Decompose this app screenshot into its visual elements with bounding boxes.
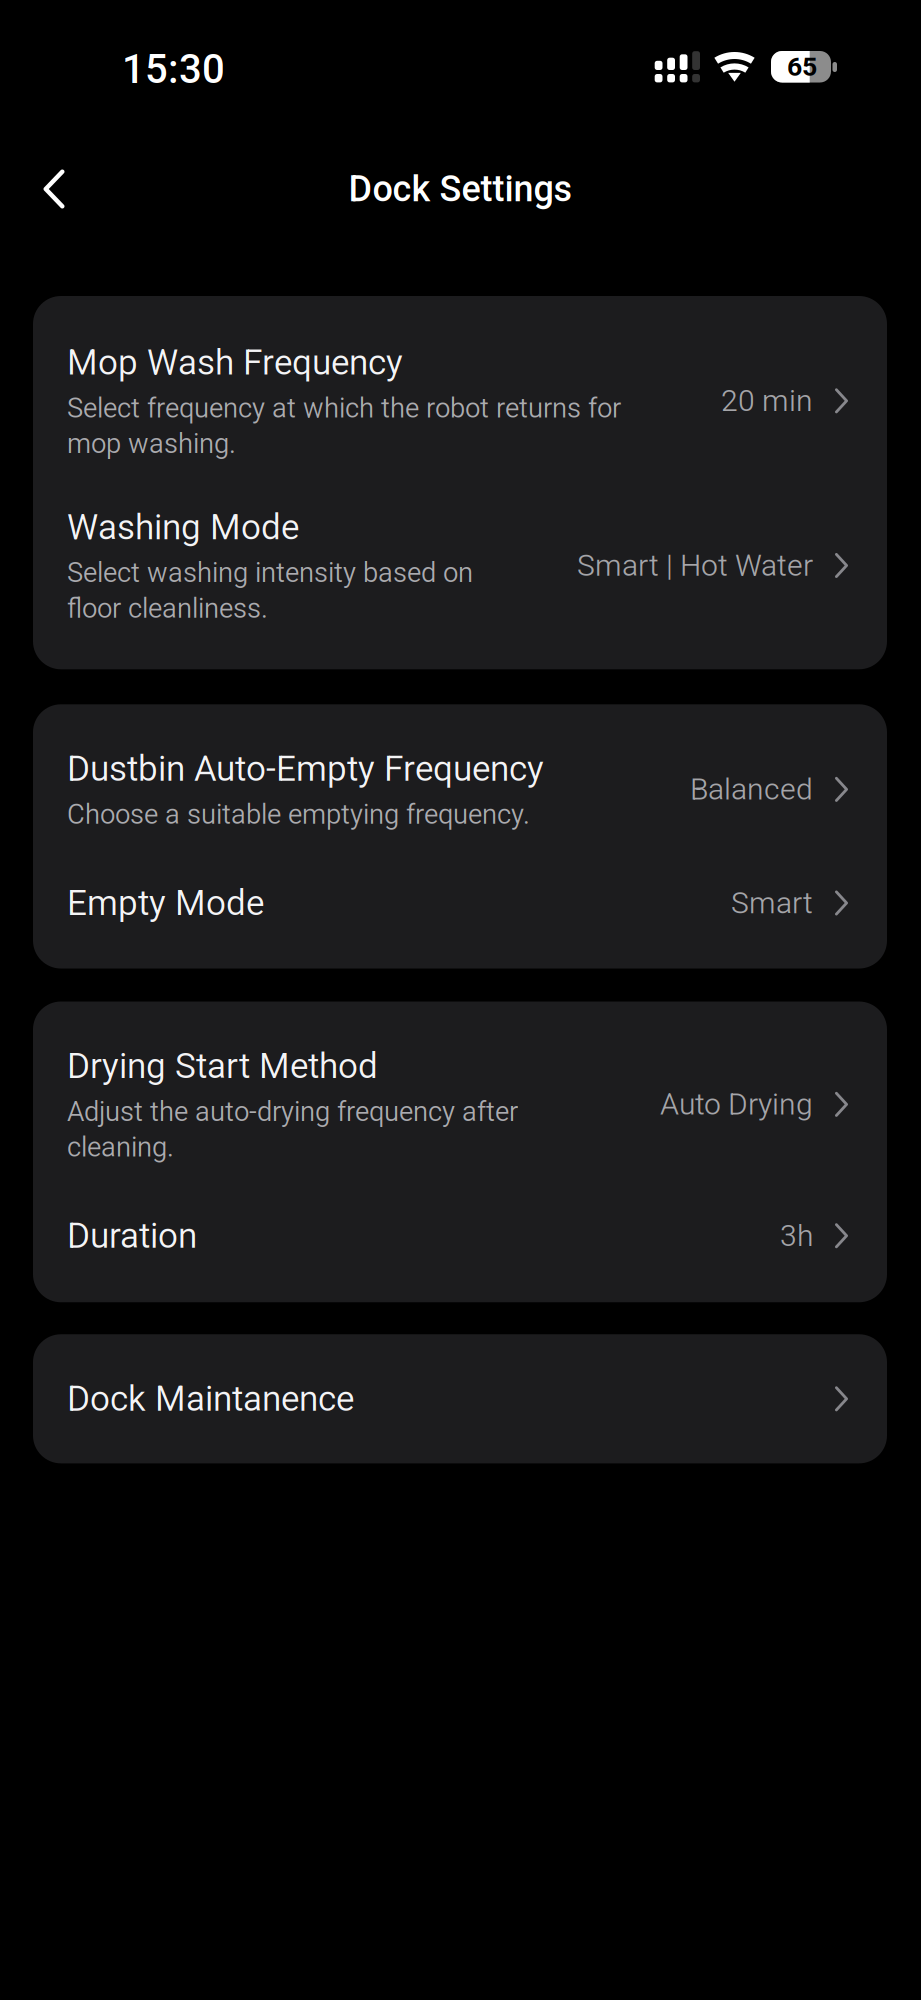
staticText: floor cleanliness. — [67, 592, 268, 624]
staticText: Smart — [731, 885, 813, 921]
staticText: Adjust the auto-drying frequency after — [67, 1096, 518, 1128]
staticText: Balanced — [690, 772, 813, 807]
button[interactable]: Duration — [33, 1186, 887, 1302]
staticText: 15:30 — [122, 46, 225, 93]
staticText: Washing Mode — [67, 507, 299, 548]
staticText: Choose a suitable emptying frequency. — [67, 798, 530, 830]
staticText: Select frequency at which the robot retu… — [67, 392, 621, 424]
button[interactable]: Dock Maintanence — [33, 1334, 887, 1463]
staticText: Smart | Hot Water — [577, 548, 813, 583]
staticText: Mop Wash Frequency — [67, 342, 403, 383]
staticText: Dock Settings — [348, 168, 572, 210]
button[interactable]: Back — [14, 140, 94, 238]
staticText: Auto Drying — [660, 1087, 813, 1122]
staticText: Drying Start Method — [67, 1045, 378, 1087]
button[interactable]: Washing Mode — [33, 482, 887, 669]
staticText: cleaning. — [67, 1131, 174, 1163]
staticText: Empty Mode — [67, 882, 264, 923]
staticText: mop washing. — [67, 428, 236, 460]
staticText: Dustbin Auto-Empty Frequency — [67, 748, 544, 789]
button[interactable]: Drying Start Method — [33, 1001, 887, 1186]
button[interactable]: Dustbin Auto-Empty Frequency — [33, 704, 887, 854]
staticText: Select washing intensity based on — [67, 557, 473, 589]
staticText: 3h — [780, 1218, 813, 1253]
button[interactable]: Empty Mode — [33, 854, 887, 968]
staticText: 65 — [787, 51, 817, 82]
staticText: Dock Maintanence — [67, 1378, 354, 1419]
staticText: Duration — [67, 1215, 197, 1256]
button[interactable]: Mop Wash Frequency — [33, 296, 887, 482]
staticText: 20 min — [721, 383, 813, 418]
